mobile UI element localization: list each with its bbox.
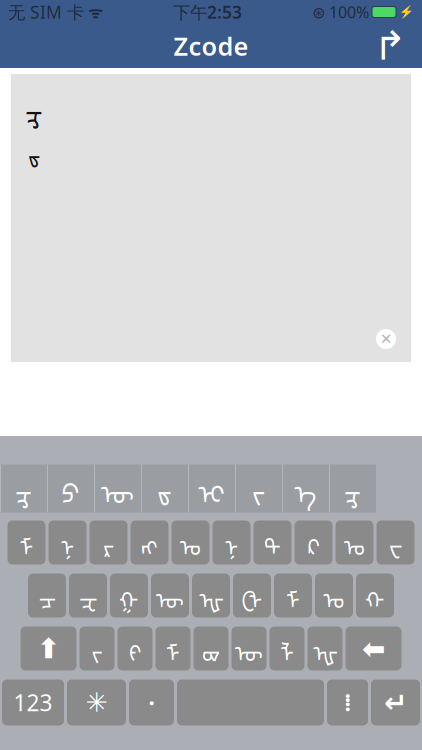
staticText: ᢐ [28, 134, 40, 172]
button[interactable]: Clear text [369, 322, 403, 356]
staticText: ↱ [373, 23, 407, 69]
staticText: ᢈ [198, 466, 224, 511]
staticText: ᢐ [157, 466, 172, 511]
button[interactable]: ᢋ [0, 464, 47, 512]
button[interactable]: ᢋ [329, 464, 376, 512]
button[interactable]: Switch keyboard [67, 679, 126, 725]
staticText: ⚡ [399, 5, 414, 19]
staticText: · [148, 687, 154, 717]
button[interactable]: ᠵ [79, 626, 114, 670]
staticText: ᠥ [235, 629, 263, 668]
button[interactable]: ᠥ [231, 626, 266, 670]
staticText: 123 [13, 687, 52, 717]
button[interactable]: ᠣ [315, 573, 353, 617]
button[interactable]: ᠩ [130, 520, 168, 564]
staticText: Zcode [173, 29, 248, 63]
staticText: ᠬ [365, 576, 385, 615]
button[interactable]: 123 [2, 679, 64, 725]
staticText: ᠴ [38, 576, 55, 615]
button[interactable]: ᠾ [307, 626, 342, 670]
staticText: ᢋ [344, 466, 361, 511]
button[interactable]: ᠿ [233, 573, 271, 617]
staticText: ᠭ [119, 576, 139, 615]
staticText: ᠵ [252, 466, 265, 511]
button[interactable]: ᠨ [48, 520, 86, 564]
staticText: ✳ [85, 687, 107, 718]
button[interactable]: ᠬ [356, 573, 394, 617]
button[interactable]: Colon [327, 679, 368, 725]
button[interactable]: ᠽ [69, 573, 107, 617]
staticText: ᠨ [60, 523, 74, 562]
staticText: ᠲ [264, 523, 281, 562]
button[interactable]: ᠡ [282, 464, 329, 512]
button[interactable]: ᠺ [294, 520, 332, 564]
staticText: 下午2:53 [173, 0, 242, 23]
button[interactable]: Period [129, 679, 174, 725]
staticText: ↵ [384, 687, 407, 718]
button[interactable]: ᠮ [155, 626, 190, 670]
button[interactable]: ᠫ [47, 464, 94, 512]
staticText: ᠯ [280, 629, 294, 668]
button[interactable]: Share [364, 24, 416, 68]
staticText: ᯤ [84, 1, 103, 23]
button[interactable]: ᠻ [117, 626, 152, 670]
staticText: ᠡ [294, 466, 316, 511]
staticText: ᠣ [180, 523, 201, 562]
staticText: ᠸ [389, 523, 402, 562]
staticText: ᠫ [61, 466, 79, 511]
button[interactable]: Return [371, 679, 420, 725]
button[interactable]: ᠵ [235, 464, 282, 512]
staticText: ᢍ [202, 629, 220, 668]
button[interactable]: ᠮ [274, 573, 312, 617]
staticText: ᠨ [224, 523, 238, 562]
button[interactable]: ᠸ [376, 520, 414, 564]
staticText: ᠥ [156, 576, 184, 615]
staticText: ᠮ [286, 576, 300, 615]
staticText: ᠤ [344, 523, 365, 562]
button[interactable]: ᠷ [89, 520, 127, 564]
staticText: ⊛ 100% [312, 1, 369, 23]
staticText: ᢋ [25, 84, 43, 132]
button[interactable]: ᠤ [335, 520, 373, 564]
staticText: ᠵ [91, 629, 102, 668]
staticText: ᠣ [323, 576, 344, 615]
button[interactable]: ᠴ [28, 573, 66, 617]
staticText: ᠩ [141, 523, 158, 562]
staticText: ᠮ [19, 523, 33, 562]
staticText: ᠾ [198, 576, 223, 615]
staticText: ᠷ [103, 523, 114, 562]
staticText: ᠾ [312, 629, 337, 668]
button[interactable]: ᠣ [171, 520, 209, 564]
button[interactable]: ᠥ [151, 573, 189, 617]
staticText: ✕ [380, 331, 392, 347]
button[interactable]: ᠮ [7, 520, 45, 564]
button[interactable]: Space [177, 679, 324, 725]
button[interactable]: Shift [20, 626, 76, 670]
button[interactable]: ᠥ [94, 464, 141, 512]
button[interactable]: ᢈ [188, 464, 235, 512]
staticText: ᠺ [307, 523, 319, 562]
staticText: ᠥ [101, 466, 134, 511]
staticText: ᠮ [166, 629, 180, 668]
staticText: ᠿ [241, 576, 262, 615]
staticText: ᠻ [129, 629, 141, 668]
staticText: ᠽ [79, 576, 97, 615]
button[interactable]: ᢍ [193, 626, 228, 670]
button[interactable]: ᢐ [141, 464, 188, 512]
staticText: ᢋ [15, 466, 32, 511]
staticText: ⁞ [344, 687, 350, 717]
button[interactable]: ᠨ [212, 520, 250, 564]
button[interactable]: ᠭ [110, 573, 148, 617]
button[interactable]: ᠯ [269, 626, 304, 670]
staticText: 无 SIM 卡 [8, 0, 84, 23]
button[interactable]: Backspace [345, 626, 401, 670]
button[interactable]: ᠾ [192, 573, 230, 617]
staticText: ⬅ [362, 633, 385, 664]
staticText: ⬆ [37, 633, 60, 664]
button[interactable]: ᠲ [253, 520, 291, 564]
